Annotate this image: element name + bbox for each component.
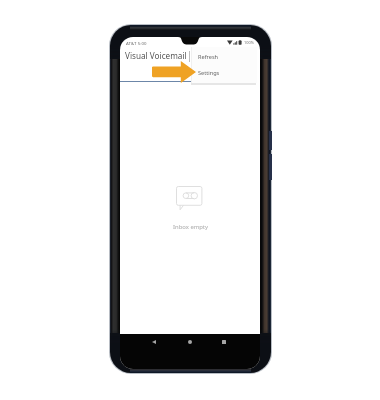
staticText: 100%: [244, 40, 254, 45]
button[interactable]: Home: [183, 335, 197, 349]
button[interactable]: Refresh: [192, 49, 257, 65]
button[interactable]: Recents: [217, 335, 231, 349]
staticText: Visual Voicemail: [125, 50, 187, 61]
staticText: Inbox empty: [173, 223, 208, 231]
button[interactable]: Settings: [192, 65, 257, 81]
button[interactable]: Visual Voicemail: [120, 47, 192, 70]
staticText: AT&T 5:00: [126, 40, 147, 46]
staticText: Settings: [198, 69, 220, 77]
button[interactable]: Back: [147, 335, 161, 349]
staticText: Refresh: [198, 53, 219, 61]
